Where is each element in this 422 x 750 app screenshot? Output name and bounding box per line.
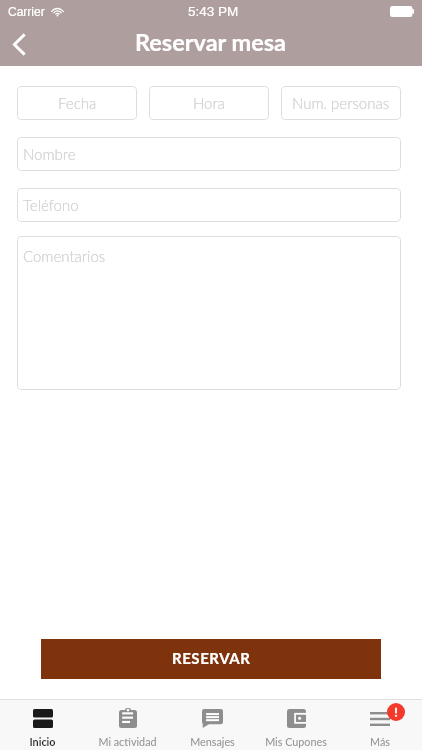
button[interactable]: Inicio (0, 699, 85, 750)
button[interactable]: Fecha (17, 86, 137, 120)
staticText: RESERVAR (172, 649, 251, 667)
button[interactable]: Nombre (17, 137, 401, 171)
staticText: 5:43 PM (188, 4, 239, 19)
button[interactable]: Hora (149, 86, 269, 120)
staticText: Mi actividad (98, 735, 157, 748)
staticText: Num. personas (292, 94, 390, 112)
staticText: Carrier (8, 5, 45, 18)
button[interactable]: Num. personas (281, 86, 401, 120)
button[interactable]: Comentarios (17, 236, 401, 390)
button[interactable]: Back (0, 22, 44, 66)
staticText: Fecha (58, 94, 97, 112)
staticText: Mensajes (190, 735, 235, 748)
button[interactable]: Más (338, 699, 422, 750)
staticText: Nombre (23, 145, 76, 163)
button[interactable]: Mis Cupones (254, 699, 338, 750)
button[interactable]: Mensajes (170, 699, 254, 750)
staticText: Comentarios (23, 247, 106, 265)
button[interactable]: Mi actividad (85, 699, 170, 750)
staticText: Hora (193, 94, 225, 112)
staticText: Inicio (29, 735, 56, 748)
staticText: Mis Cupones (265, 735, 327, 748)
button[interactable]: RESERVAR (41, 639, 381, 679)
staticText: Reservar mesa (135, 28, 287, 56)
staticText: Teléfono (23, 196, 79, 214)
staticText: Más (370, 735, 390, 748)
button[interactable]: Teléfono (17, 188, 401, 222)
